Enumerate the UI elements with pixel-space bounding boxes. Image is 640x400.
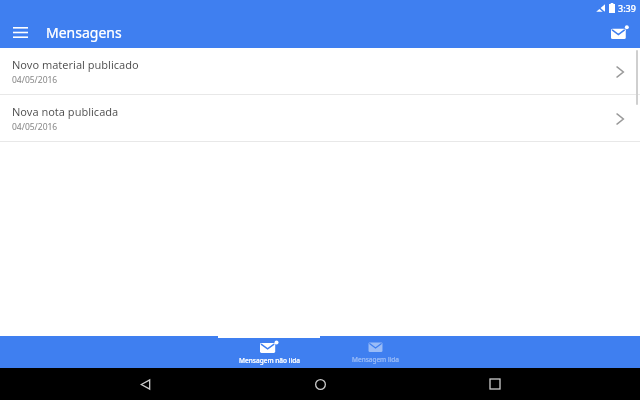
staticText: 04/05/2016: [12, 74, 58, 86]
button[interactable]: Messages: [605, 17, 635, 47]
button[interactable]: Mensagem não lida: [218, 336, 320, 368]
staticText: Mensagem lida: [352, 355, 399, 364]
staticText: Novo material publicado: [12, 57, 139, 72]
button[interactable]: Open navigation menu: [6, 18, 34, 46]
button[interactable]: Nova nota publicada: [0, 95, 640, 142]
button[interactable]: Back: [128, 368, 162, 400]
button[interactable]: Mensagem lida: [320, 336, 430, 368]
staticText: Mensagens: [46, 23, 122, 42]
staticText: Nova nota publicada: [12, 104, 119, 119]
staticText: 3:39: [618, 2, 636, 14]
button[interactable]: Recent apps: [478, 368, 512, 400]
button[interactable]: Home: [303, 368, 337, 400]
staticText: Mensagem não lida: [239, 356, 300, 365]
staticText: 04/05/2016: [12, 121, 58, 133]
button[interactable]: Novo material publicado: [0, 48, 640, 95]
